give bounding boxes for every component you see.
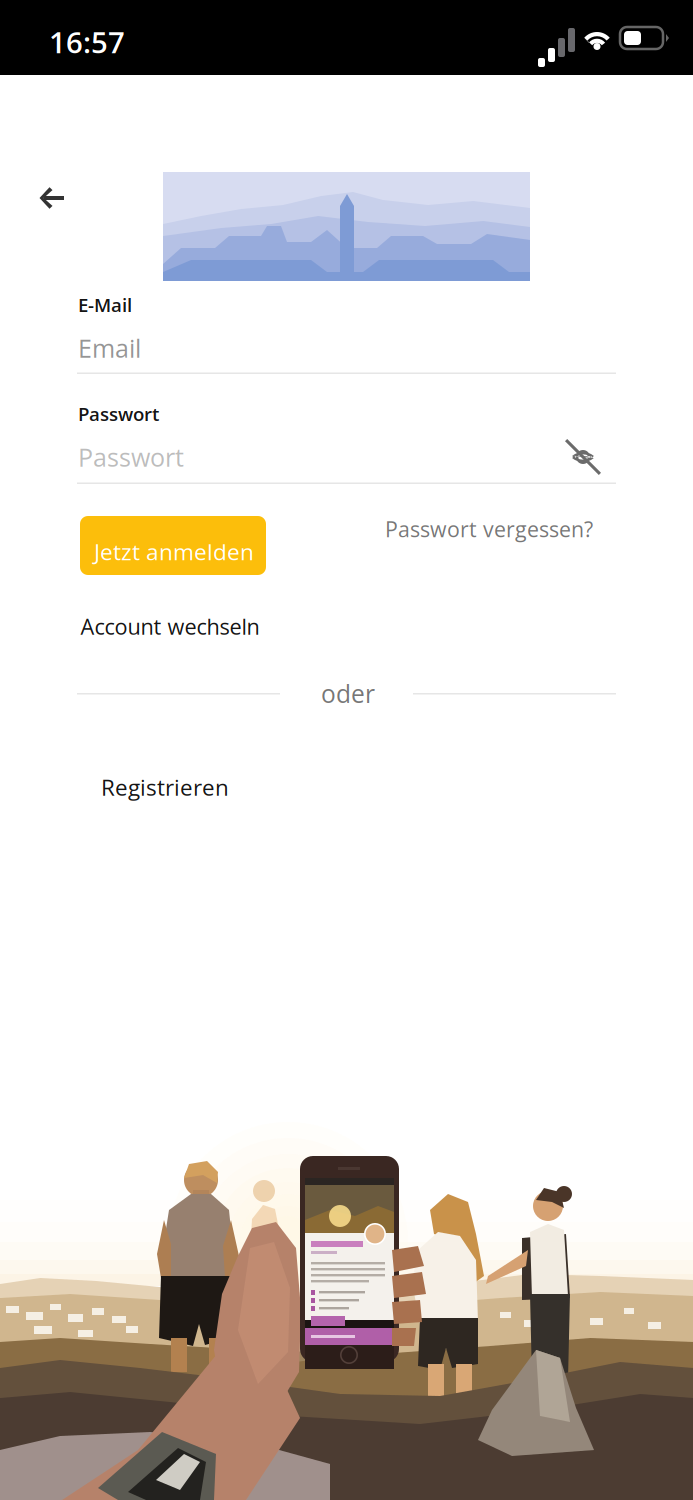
staticText: Registrieren (101, 772, 229, 802)
button[interactable]: Account wechseln (80, 604, 280, 652)
staticText: Jetzt anmelden (94, 536, 254, 567)
staticText: E-Mail (78, 292, 132, 317)
staticText: Account wechseln (80, 611, 259, 641)
button[interactable]: Back (20, 166, 84, 230)
staticText: 16:57 (49, 22, 125, 62)
staticText: Passwort (78, 401, 159, 426)
staticText: Passwort vergessen? (385, 514, 593, 544)
staticText: Email (78, 331, 141, 365)
button[interactable]: Passwort vergessen? (385, 507, 605, 555)
staticText: Passwort (78, 440, 184, 474)
button[interactable]: Jetzt anmelden (80, 516, 266, 575)
staticText: oder (321, 677, 375, 710)
button[interactable]: Registrieren (84, 756, 239, 816)
button[interactable]: Show password (555, 429, 611, 485)
